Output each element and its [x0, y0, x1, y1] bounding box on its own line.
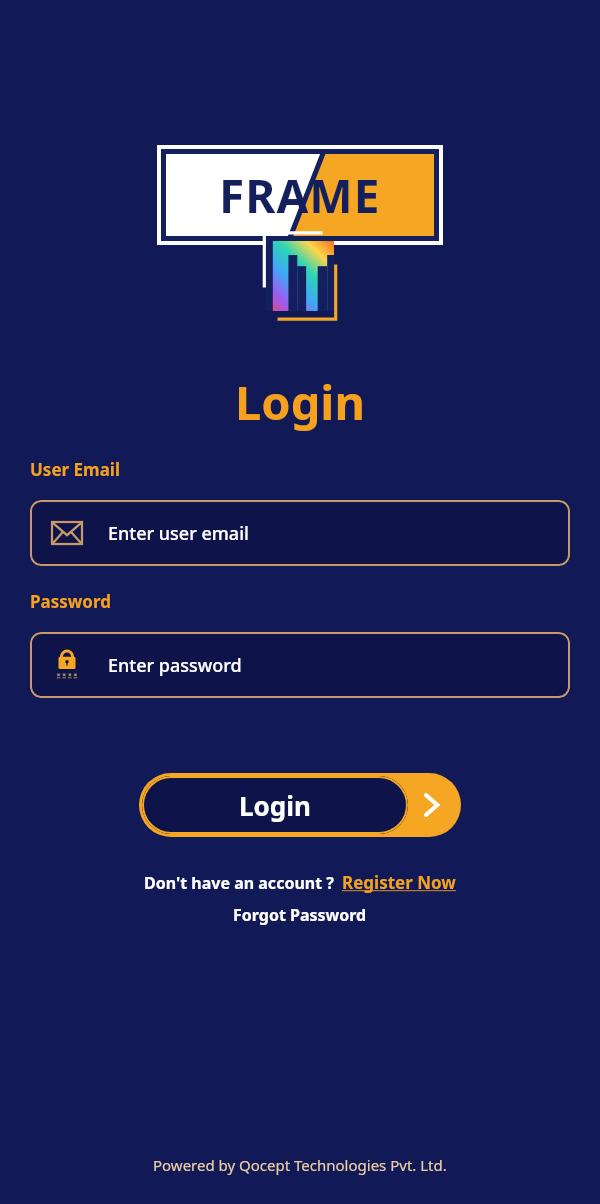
staticText: Powered by Qocept Technologies Pvt. Ltd. [153, 1155, 447, 1175]
other: Password [50, 648, 84, 682]
staticText: Login [239, 788, 311, 823]
staticText: Don't have an account ? [144, 872, 334, 894]
staticText: Enter user email [108, 521, 249, 546]
button[interactable]: Password [30, 632, 570, 698]
staticText: Forgot Password [233, 904, 367, 926]
staticText: FRAME [219, 164, 381, 227]
button[interactable]: Register Now [342, 871, 456, 894]
button[interactable]: Login [139, 773, 461, 837]
staticText: Password [30, 590, 111, 613]
staticText: Enter password [108, 653, 242, 678]
button[interactable]: Forgot Password [233, 904, 367, 926]
staticText: Login [235, 370, 365, 434]
other: Email [52, 522, 82, 544]
staticText: Register Now [342, 871, 456, 894]
button[interactable]: Email [30, 500, 570, 566]
staticText: User Email [30, 458, 120, 481]
